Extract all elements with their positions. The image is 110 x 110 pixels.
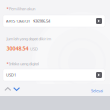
staticText: * [6,6,8,11]
button[interactable]: ARTS 1360731 [3,15,105,27]
button[interactable]: USD1 [3,69,105,81]
staticText: * [6,61,8,66]
button[interactable]: Selesai [88,85,106,96]
staticText: Jumlah yang dapat dikirim [6,36,51,41]
staticText: 30048.54 [6,45,28,52]
staticText: USD [30,46,38,52]
staticText: ARTS 1360731 [6,18,30,24]
staticText: USD1 [6,72,16,78]
staticText: $36986.54 [33,18,50,24]
button[interactable]: Next field [11,85,22,93]
staticText: Infaka uang digital [9,61,39,66]
button[interactable]: Previous field [2,85,13,93]
staticText: Selesai [91,88,103,93]
staticText: Pemilihan akun [9,6,35,11]
